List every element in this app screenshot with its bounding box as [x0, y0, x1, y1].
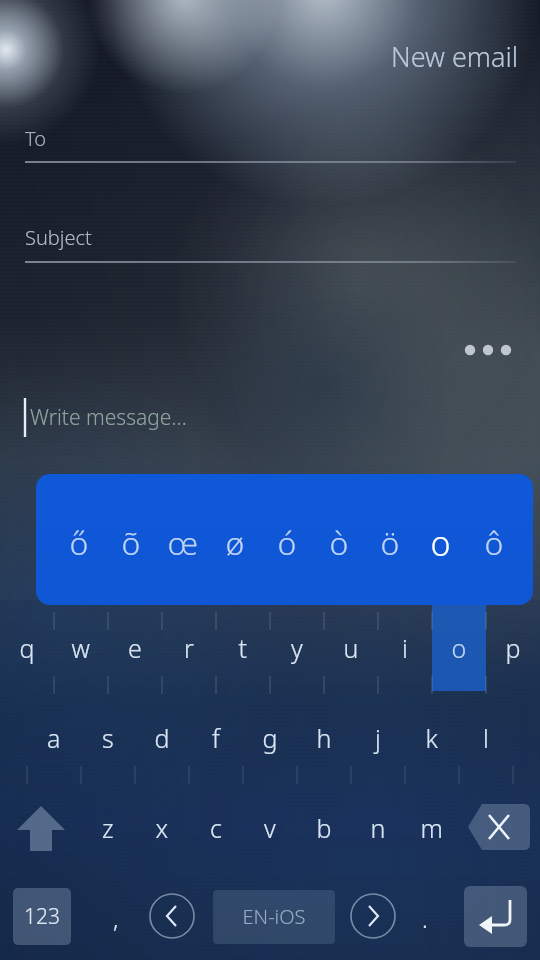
button[interactable]: d: [135, 708, 189, 768]
button[interactable]: y: [270, 618, 324, 678]
button[interactable]: v: [243, 798, 297, 858]
button[interactable]: i: [378, 618, 432, 678]
button[interactable]: q: [0, 618, 54, 678]
button[interactable]: h: [297, 708, 351, 768]
button[interactable]: o: [415, 500, 467, 586]
button[interactable]: Period: [403, 888, 447, 946]
button[interactable]: Backspace: [466, 798, 532, 858]
button[interactable]: r: [162, 618, 216, 678]
button[interactable]: g: [243, 708, 297, 768]
button[interactable]: n: [351, 798, 405, 858]
button[interactable]: w: [54, 618, 108, 678]
button[interactable]: f: [189, 708, 243, 768]
button[interactable]: More options: [452, 330, 518, 372]
button[interactable]: k: [405, 708, 459, 768]
button[interactable]: c: [189, 798, 243, 858]
button[interactable]: s: [81, 708, 135, 768]
button[interactable]: e: [108, 618, 162, 678]
button[interactable]: ő: [53, 500, 105, 586]
button[interactable]: œ: [157, 500, 209, 586]
button[interactable]: b: [297, 798, 351, 858]
button[interactable]: x: [135, 798, 189, 858]
button[interactable]: l: [459, 708, 513, 768]
button[interactable]: ô: [468, 500, 520, 586]
button[interactable]: õ: [105, 500, 157, 586]
button[interactable]: Numbers: [11, 886, 73, 947]
button[interactable]: z: [81, 798, 135, 858]
button[interactable]: New email: [340, 32, 520, 78]
button[interactable]: ø: [209, 500, 261, 586]
button[interactable]: Write message: [20, 390, 520, 450]
button[interactable]: Subject: [20, 210, 520, 266]
button[interactable]: ó: [261, 500, 313, 586]
button[interactable]: a: [27, 708, 81, 768]
button[interactable]: Previous: [148, 892, 196, 940]
button[interactable]: t: [216, 618, 270, 678]
button[interactable]: u: [324, 618, 378, 678]
button[interactable]: Enter: [464, 886, 527, 947]
button[interactable]: o: [432, 618, 486, 678]
button[interactable]: Next: [349, 892, 397, 940]
button[interactable]: p: [486, 618, 540, 678]
button[interactable]: Space EN-iOS: [213, 890, 335, 944]
button[interactable]: To: [20, 110, 520, 166]
button[interactable]: m: [405, 798, 459, 858]
button[interactable]: j: [351, 708, 405, 768]
button[interactable]: ò: [313, 500, 365, 586]
button[interactable]: ö: [364, 500, 416, 586]
button[interactable]: Comma: [92, 888, 140, 946]
button[interactable]: Shift: [8, 798, 70, 858]
